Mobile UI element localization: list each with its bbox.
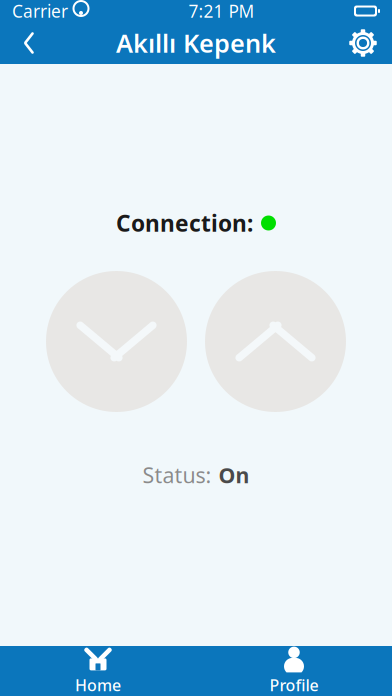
button[interactable]: Settings <box>340 22 386 64</box>
staticText: 7:21 PM <box>188 0 254 22</box>
button[interactable]: Profile <box>196 646 392 696</box>
staticText: Akıllı Kepenk <box>116 26 276 60</box>
staticText: Profile <box>269 674 318 696</box>
button[interactable]: Close shutter <box>205 271 346 412</box>
staticText: Status: <box>142 461 211 489</box>
button[interactable]: Back <box>6 22 52 64</box>
staticText: Carrier <box>12 0 68 22</box>
button[interactable]: Home <box>0 646 196 696</box>
button[interactable]: Open shutter <box>46 271 187 412</box>
staticText: On <box>218 461 249 489</box>
staticText: Connection: <box>116 208 253 238</box>
staticText: Home <box>75 674 121 696</box>
